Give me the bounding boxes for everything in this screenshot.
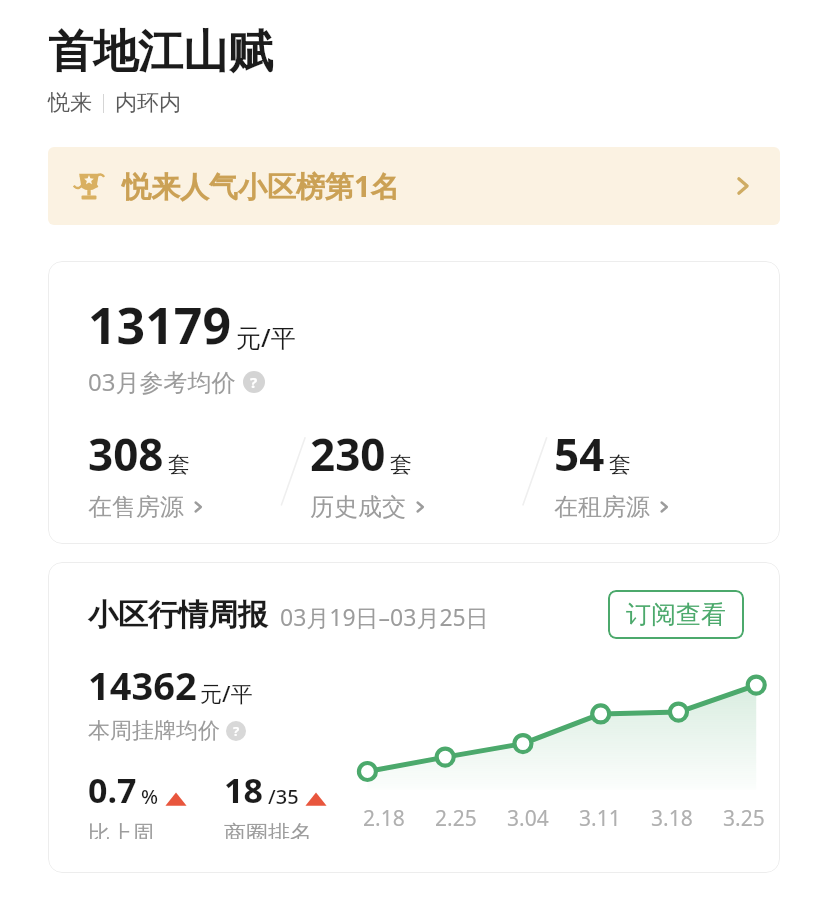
staticText: 悦来人气小区榜第1名 bbox=[122, 166, 400, 206]
staticText: 小区行情周报 bbox=[88, 596, 268, 634]
staticText: 历史成交 bbox=[310, 492, 406, 522]
button[interactable]: 308 bbox=[88, 424, 292, 522]
staticText: 3.18 bbox=[651, 804, 693, 833]
staticText: ? bbox=[250, 372, 258, 392]
staticText: 内环内 bbox=[115, 89, 181, 117]
staticText: 03月参考均价 bbox=[88, 365, 236, 398]
staticText: 悦来 bbox=[48, 89, 92, 117]
staticText: 13179 bbox=[88, 291, 231, 359]
staticText: 308 bbox=[88, 424, 164, 484]
staticText: 在租房源 bbox=[554, 492, 650, 522]
button[interactable]: 54 bbox=[554, 424, 780, 522]
button[interactable]: 订阅查看 bbox=[608, 590, 744, 639]
staticText: /35 bbox=[268, 783, 299, 810]
staticText: 3.11 bbox=[579, 804, 621, 833]
staticText: 03月19日–03月25日 bbox=[280, 601, 489, 632]
staticText: 在售房源 bbox=[88, 492, 184, 522]
staticText: 14362 bbox=[88, 659, 197, 711]
staticText: 元/平 bbox=[236, 320, 296, 354]
staticText: 商圈排名 bbox=[224, 820, 312, 839]
staticText: 3.04 bbox=[507, 804, 549, 833]
staticText: 套 bbox=[609, 451, 631, 479]
staticText: % bbox=[141, 783, 159, 810]
staticText: 2.25 bbox=[435, 804, 477, 833]
other: 查看排行榜 bbox=[730, 173, 756, 199]
staticText: ? bbox=[233, 722, 240, 740]
staticText: 0.7 bbox=[88, 767, 137, 813]
staticText: 比上周 bbox=[88, 820, 154, 839]
staticText: 订阅查看 bbox=[626, 599, 726, 630]
button[interactable]: 230 bbox=[310, 424, 536, 522]
staticText: 首地江山赋 bbox=[48, 24, 273, 81]
staticText: 54 bbox=[554, 424, 605, 484]
staticText: 2.18 bbox=[363, 804, 405, 833]
staticText: 230 bbox=[310, 424, 386, 484]
staticText: 本周挂牌均价 bbox=[88, 717, 220, 745]
staticText: 套 bbox=[168, 451, 190, 479]
staticText: 套 bbox=[390, 451, 412, 479]
staticText: 3.25 bbox=[723, 804, 765, 833]
staticText: 元/平 bbox=[200, 678, 253, 708]
staticText: 18 bbox=[224, 767, 263, 813]
button[interactable]: 悦来人气小区榜第1名 bbox=[48, 147, 780, 225]
